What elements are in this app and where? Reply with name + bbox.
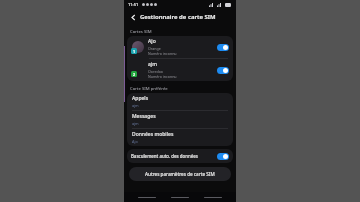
button[interactable]: Activer la carte SIM	[217, 153, 229, 160]
staticText: Données mobiles	[132, 131, 174, 138]
button[interactable]: Activer la carte SIM	[217, 44, 229, 51]
staticText: Messages	[132, 113, 156, 120]
staticText: Carte SIM préférée	[130, 86, 168, 92]
staticText: Basculement auto. des données	[131, 153, 217, 159]
staticText: Ajo	[148, 38, 156, 45]
button[interactable]: Appels	[127, 93, 233, 110]
staticText: ajm	[132, 103, 139, 108]
staticText: 11:51	[128, 2, 139, 7]
button[interactable]: Navigation	[170, 193, 190, 202]
staticText: 2	[133, 72, 136, 77]
button[interactable]: 2	[127, 59, 233, 81]
button[interactable]: Basculement auto. des données	[127, 149, 233, 163]
staticText: Cartes SIM	[130, 29, 152, 35]
staticText: Numéro inconnu	[148, 51, 177, 56]
staticText: Numéro inconnu	[148, 74, 177, 79]
button[interactable]: Navigation	[203, 193, 223, 202]
button[interactable]: Activer la carte SIM	[217, 67, 229, 74]
button[interactable]: Messages	[127, 111, 233, 128]
button[interactable]: Navigation	[137, 193, 157, 202]
button[interactable]: 1	[127, 36, 233, 58]
staticText: ajm	[148, 61, 157, 68]
button[interactable]: Autres paramètres de carte SIM	[129, 167, 231, 181]
button[interactable]: Données mobiles	[127, 129, 233, 146]
staticText: ajm	[132, 121, 139, 126]
staticText: 1	[133, 49, 136, 54]
button[interactable]: Retour	[128, 12, 138, 22]
staticText: Gestionnaire de carte SIM	[140, 13, 216, 21]
staticText: Appels	[132, 95, 149, 102]
staticText: Ooredoo	[148, 69, 163, 74]
staticText: Orange	[148, 46, 161, 51]
staticText: Autres paramètres de carte SIM	[145, 171, 215, 177]
staticText: Ajo	[132, 139, 138, 144]
